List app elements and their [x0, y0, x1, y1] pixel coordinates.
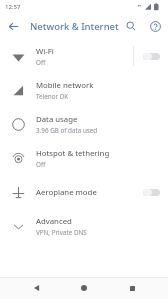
button[interactable]: Recent apps: [121, 277, 143, 299]
button[interactable]: Search: [119, 14, 143, 38]
button[interactable]: Back: [26, 277, 48, 299]
staticText: Telenor DK: [36, 92, 69, 101]
staticText: Hotspot & tethering: [36, 148, 110, 159]
button[interactable]: Aeroplane mode toggle: [134, 175, 168, 209]
button[interactable]: Hotspot & tethering: [0, 141, 168, 175]
staticText: Aeroplane mode: [36, 187, 97, 198]
staticText: Network & Internet: [30, 20, 119, 33]
staticText: Off: [36, 58, 46, 67]
staticText: 3.96 GB of data used: [36, 126, 98, 135]
staticText: Mobile network: [36, 80, 94, 91]
staticText: 12:57: [5, 3, 21, 11]
staticText: Wi-Fi: [36, 46, 54, 57]
button[interactable]: Wi-Fi: [0, 39, 168, 73]
staticText: Data usage: [36, 114, 78, 125]
button[interactable]: Back: [0, 13, 26, 39]
staticText: VPN, Private DNS: [36, 228, 87, 237]
button[interactable]: Help: [143, 14, 167, 38]
button[interactable]: Wi-Fi toggle: [134, 39, 168, 73]
button[interactable]: Data usage: [0, 107, 168, 141]
staticText: Advanced: [36, 216, 72, 227]
staticText: Off: [36, 160, 46, 169]
button[interactable]: Aeroplane mode: [0, 175, 168, 209]
button[interactable]: Home: [73, 277, 95, 299]
button[interactable]: Mobile network: [0, 73, 168, 107]
button[interactable]: Advanced: [0, 209, 168, 243]
